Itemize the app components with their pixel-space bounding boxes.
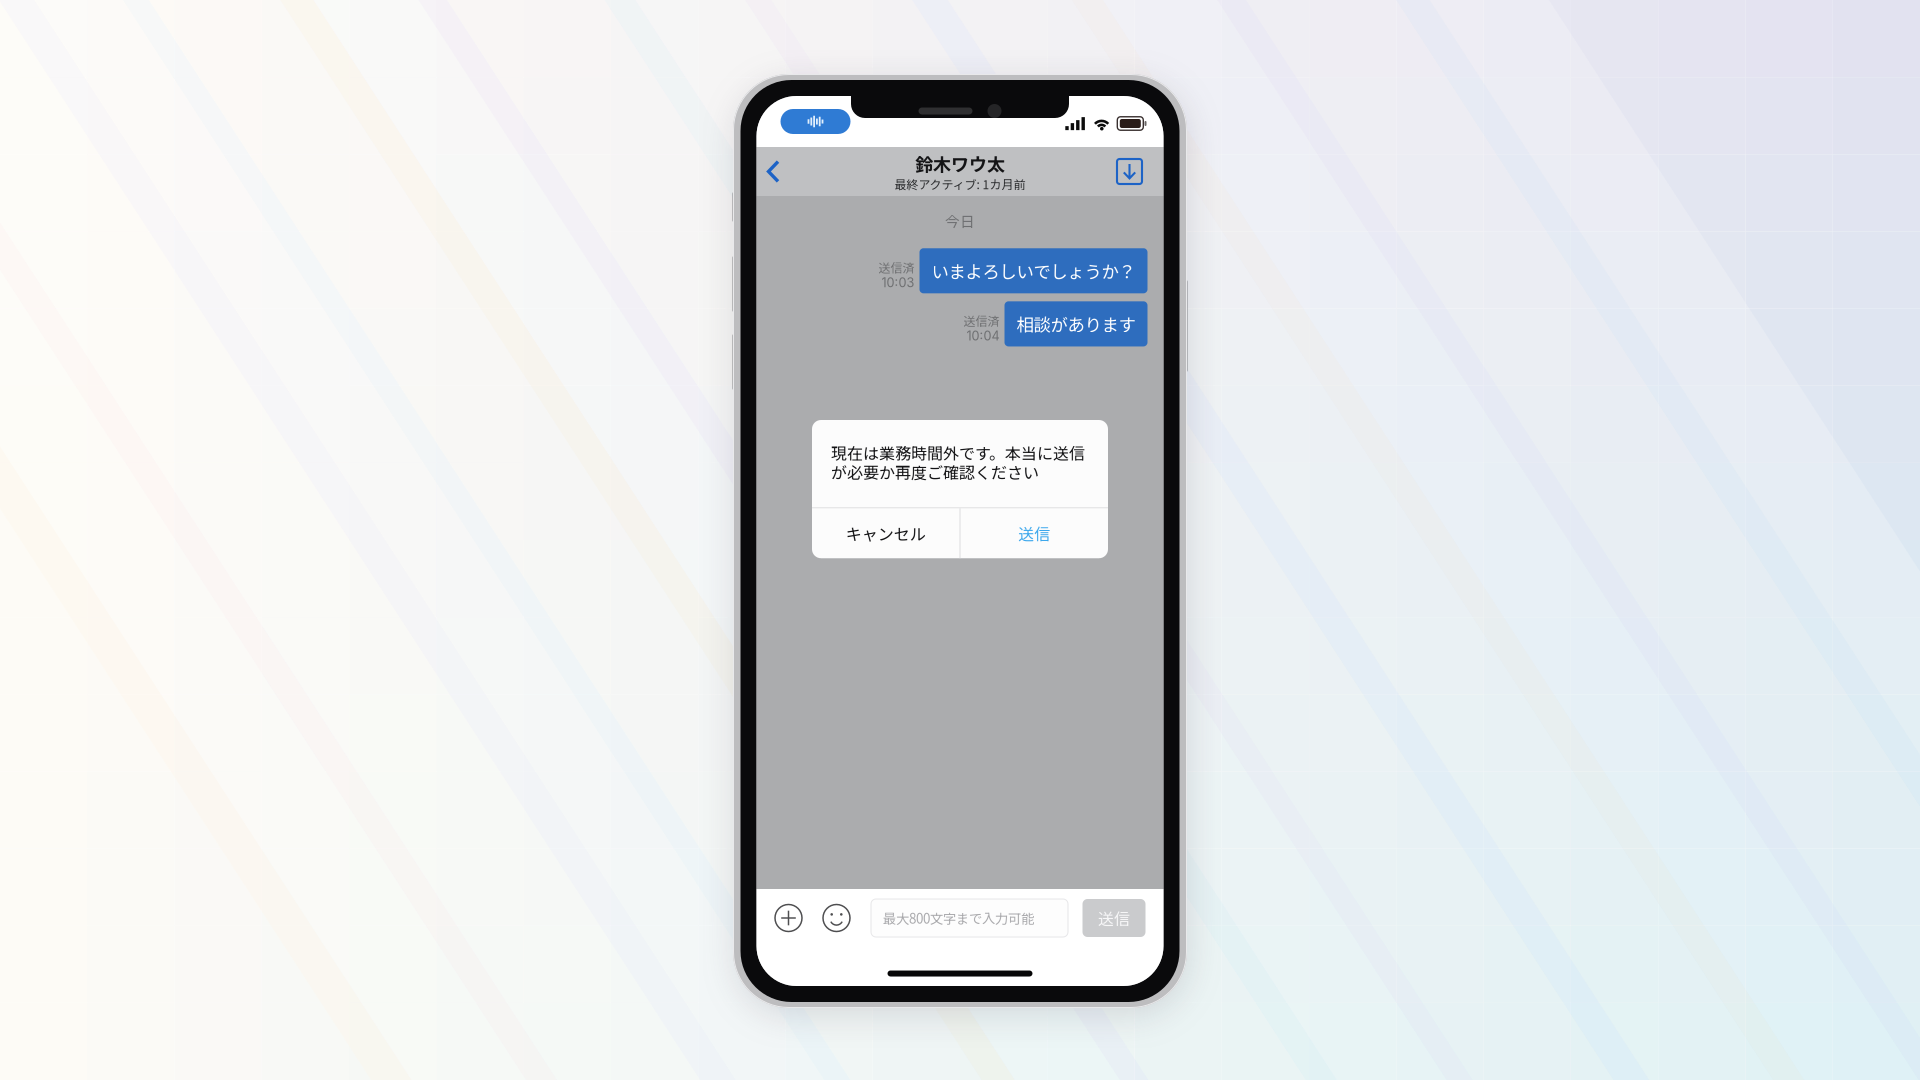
staticText: 相談があります	[1016, 311, 1135, 336]
button[interactable]: Save conversation	[1109, 147, 1149, 196]
staticText: 現在は業務時間外です。本当に送信が必要か再度ご確認ください	[831, 441, 1085, 483]
button[interactable]: Back	[756, 147, 790, 196]
button[interactable]: Live audio session	[780, 109, 850, 134]
staticText: 送信	[1018, 522, 1050, 545]
button[interactable]: 送信	[960, 508, 1108, 558]
button[interactable]: 送信	[1082, 899, 1145, 937]
button[interactable]: Stickers and emoji	[816, 896, 856, 940]
staticText: キャンセル	[846, 522, 926, 545]
staticText: 鈴木ワウ太	[915, 150, 1005, 176]
button[interactable]: Add attachment	[768, 896, 808, 940]
staticText: 今日	[945, 210, 975, 231]
staticText: 送信済	[878, 259, 914, 276]
staticText: 最終アクティブ: 1カ月前	[894, 175, 1025, 193]
button[interactable]: キャンセル	[812, 508, 959, 558]
staticText: 送信済	[963, 312, 999, 329]
staticText: 最大800文字まで入力可能	[883, 908, 1034, 928]
staticText: 10:04	[966, 328, 999, 343]
staticText: いまよろしいでしょうか？	[931, 258, 1135, 283]
staticText: 10:03	[881, 275, 914, 290]
staticText: 送信	[1098, 906, 1130, 930]
